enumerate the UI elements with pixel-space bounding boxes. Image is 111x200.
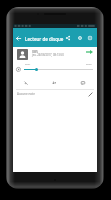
staticText: 00:01 xyxy=(25,63,31,66)
button[interactable]: Edit note xyxy=(86,90,94,98)
button[interactable]: Call back xyxy=(22,79,30,87)
staticText: 00:30 xyxy=(86,63,92,66)
staticText: Aucune note xyxy=(17,92,35,96)
button[interactable]: Play xyxy=(15,66,21,72)
staticText: 085 xyxy=(32,49,39,54)
button[interactable]: Share xyxy=(64,34,72,42)
button[interactable]: Send message xyxy=(79,79,87,87)
button[interactable]: Add to contacts xyxy=(76,34,84,42)
staticText: jeu. 24/08/2017, 08:13:50 xyxy=(32,53,64,57)
button[interactable]: Add contact xyxy=(50,79,58,87)
button[interactable]: More options xyxy=(86,34,94,42)
staticText: Lecteur de disque xyxy=(25,36,64,42)
button[interactable]: Back xyxy=(14,34,23,43)
